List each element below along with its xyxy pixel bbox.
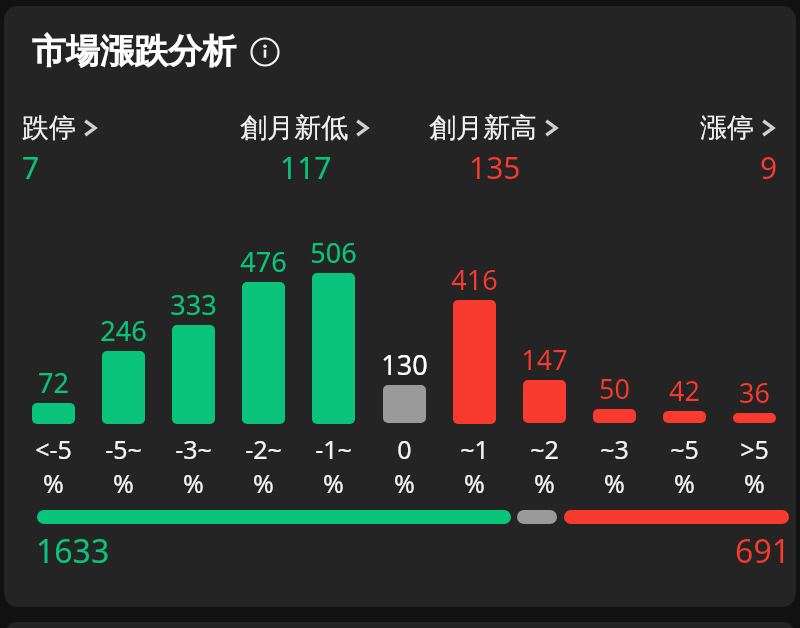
staticText: 1633 — [36, 529, 110, 573]
button[interactable] — [242, 282, 285, 424]
staticText: 691 — [604, 529, 790, 573]
staticText: ~5 — [670, 432, 699, 466]
staticText: % — [534, 466, 555, 500]
staticText: ~3 — [600, 432, 629, 466]
staticText: 漲停 — [700, 111, 754, 145]
staticText: 72 — [38, 364, 69, 401]
button[interactable]: 跌停 — [22, 111, 211, 188]
staticText: <-5 — [35, 432, 72, 466]
button[interactable] — [523, 380, 566, 423]
button[interactable] — [453, 300, 496, 424]
staticText: 跌停 — [22, 111, 76, 145]
staticText: 130 — [381, 346, 428, 383]
staticText: % — [43, 466, 64, 500]
staticText: >5 — [740, 432, 769, 466]
staticText: % — [253, 466, 274, 500]
staticText: % — [744, 466, 765, 500]
staticText: 9 — [760, 147, 778, 188]
button[interactable] — [32, 403, 75, 424]
staticText: % — [323, 466, 344, 500]
button[interactable]: 漲停 — [589, 111, 778, 188]
button[interactable]: 創月新高 — [400, 111, 589, 188]
staticText: 創月新高 — [429, 111, 537, 145]
staticText: -5~ — [105, 432, 142, 466]
staticText: -3~ — [175, 432, 212, 466]
staticText: 7 — [22, 147, 40, 188]
staticText: 36 — [739, 374, 770, 411]
staticText: 246 — [100, 312, 147, 349]
button[interactable] — [663, 411, 706, 423]
button[interactable]: 市場漲跌分析 — [32, 30, 280, 73]
staticText: -1~ — [315, 432, 352, 466]
button[interactable] — [102, 351, 145, 424]
button[interactable] — [172, 325, 215, 424]
staticText: % — [604, 466, 625, 500]
staticText: % — [674, 466, 695, 500]
staticText: 創月新低 — [240, 111, 348, 145]
button[interactable] — [312, 273, 355, 424]
staticText: 市場漲跌分析 — [32, 30, 236, 73]
button[interactable] — [733, 413, 776, 423]
button[interactable]: Information — [250, 37, 280, 67]
staticText: 147 — [521, 341, 568, 378]
staticText: % — [183, 466, 204, 500]
staticText: % — [394, 466, 415, 500]
staticText: ~1 — [460, 432, 489, 466]
staticText: 506 — [310, 234, 357, 271]
button[interactable] — [593, 409, 636, 423]
button[interactable] — [383, 385, 426, 423]
staticText: 135 — [469, 147, 521, 188]
staticText: 333 — [170, 286, 217, 323]
staticText: ~2 — [530, 432, 559, 466]
staticText: 50 — [599, 370, 630, 407]
staticText: 416 — [451, 261, 498, 298]
staticText: -2~ — [245, 432, 282, 466]
staticText: % — [464, 466, 485, 500]
staticText: 0 — [397, 432, 412, 466]
staticText: 42 — [669, 372, 700, 409]
staticText: % — [113, 466, 134, 500]
staticText: 476 — [240, 243, 287, 280]
staticText: 117 — [280, 147, 332, 188]
button[interactable]: 創月新低 — [211, 111, 400, 188]
